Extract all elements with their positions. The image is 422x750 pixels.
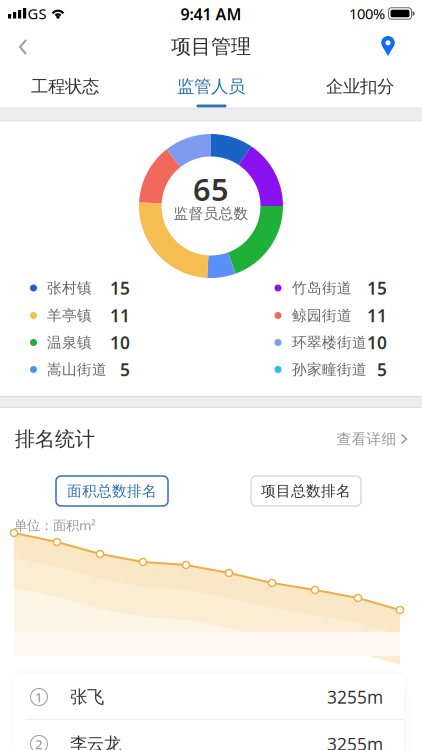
staticText: 10 bbox=[367, 331, 387, 354]
staticText: 15 bbox=[110, 276, 130, 299]
button[interactable]: Back bbox=[8, 32, 38, 62]
staticText: 孙家疃街道 bbox=[292, 360, 367, 378]
button[interactable]: 项目总数排名 bbox=[251, 476, 361, 506]
staticText: 环翠楼街道 bbox=[292, 333, 367, 351]
button[interactable]: 1 bbox=[14, 674, 404, 720]
staticText: 鲸园街道 bbox=[292, 306, 352, 324]
staticText: 张村镇 bbox=[47, 279, 92, 297]
staticText: 监督员总数 bbox=[173, 204, 248, 222]
staticText: 竹岛街道 bbox=[292, 279, 352, 297]
button[interactable]: 企业扣分 bbox=[305, 66, 415, 106]
button[interactable]: 2 bbox=[14, 721, 404, 750]
staticText: 1 bbox=[35, 688, 43, 706]
staticText: 羊亭镇 bbox=[47, 306, 92, 324]
staticText: 工程状态 bbox=[31, 76, 99, 97]
staticText: 2 bbox=[35, 735, 43, 750]
staticText: 3255m bbox=[327, 732, 383, 750]
staticText: 10 bbox=[110, 331, 130, 354]
button[interactable]: 面积总数排名 bbox=[56, 476, 168, 506]
staticText: 李云龙 bbox=[70, 733, 121, 750]
staticText: 15 bbox=[367, 276, 387, 299]
staticText: 11 bbox=[367, 304, 387, 327]
staticText: 65 bbox=[193, 169, 229, 209]
staticText: 查看详细 bbox=[336, 430, 396, 448]
staticText: 排名统计 bbox=[15, 427, 95, 451]
staticText: 5 bbox=[377, 358, 387, 381]
button[interactable]: 监管人员 bbox=[156, 66, 266, 106]
staticText: 项目管理 bbox=[171, 34, 251, 59]
staticText: 面积总数排名 bbox=[67, 482, 157, 500]
staticText: 3255m bbox=[327, 685, 383, 708]
staticText: 企业扣分 bbox=[326, 76, 394, 97]
staticText: 5 bbox=[120, 358, 130, 381]
staticText: 嵩山街道 bbox=[47, 360, 107, 378]
button[interactable]: Location bbox=[373, 36, 403, 58]
staticText: 温泉镇 bbox=[47, 333, 92, 351]
staticText: 单位：面积m² bbox=[14, 516, 96, 534]
staticText: 张飞 bbox=[70, 686, 104, 708]
staticText: 监管人员 bbox=[177, 76, 245, 97]
button[interactable]: 查看详细 bbox=[336, 430, 407, 448]
staticText: GS bbox=[27, 4, 46, 23]
staticText: 9:41 AM bbox=[180, 3, 241, 25]
staticText: 11 bbox=[110, 304, 130, 327]
button[interactable]: 工程状态 bbox=[10, 66, 120, 106]
staticText: 项目总数排名 bbox=[261, 482, 351, 500]
staticText: 100% bbox=[349, 4, 385, 23]
